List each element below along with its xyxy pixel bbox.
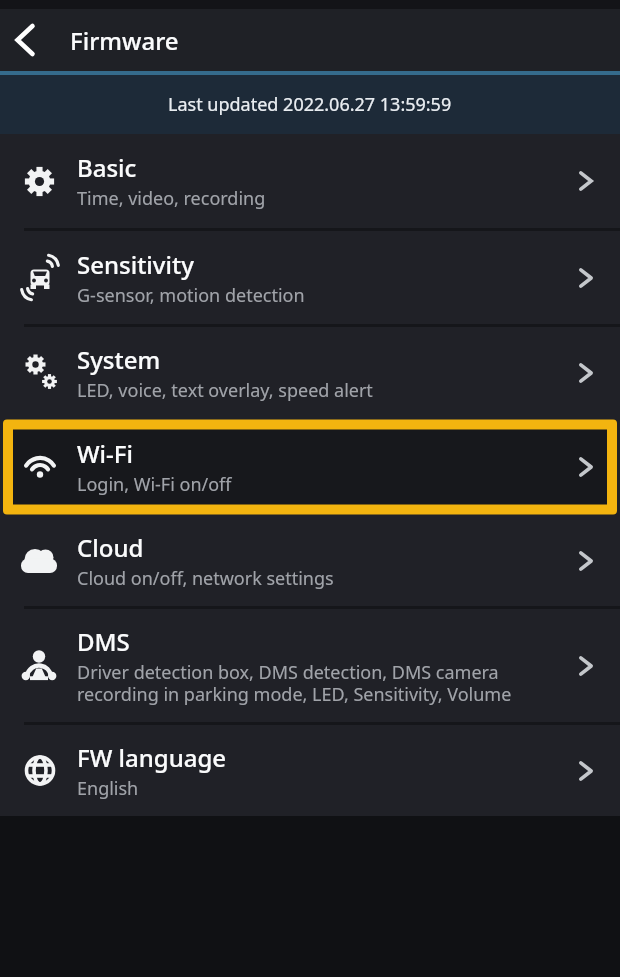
staticText: DMS	[77, 625, 130, 658]
staticText: G-sensor, motion detection	[77, 283, 305, 308]
staticText: Driver detection box, DMS detection, DMS…	[77, 660, 512, 706]
staticText: Wi-Fi	[77, 437, 133, 470]
button[interactable]: FW language	[0, 725, 620, 816]
staticText: English	[77, 776, 139, 801]
staticText: LED, voice, text overlay, speed alert	[77, 378, 373, 403]
staticText: Basic	[77, 151, 137, 184]
button[interactable]: System	[0, 327, 620, 419]
staticText: System	[77, 343, 161, 376]
staticText: Last updated 2022.06.27 13:59:59	[168, 92, 452, 117]
staticText: Cloud on/off, network settings	[77, 566, 334, 591]
staticText: Sensitivity	[77, 248, 194, 281]
button[interactable]	[0, 15, 50, 65]
button[interactable]: Wi-Fi	[0, 429, 620, 505]
staticText: Login, Wi-Fi on/off	[77, 472, 232, 497]
button[interactable]: DMS	[0, 609, 620, 722]
staticText: Firmware	[70, 24, 179, 57]
staticText: Time, video, recording	[77, 186, 266, 211]
staticText: Cloud	[77, 531, 144, 564]
button[interactable]: Cloud	[0, 515, 620, 606]
button[interactable]: Basic	[0, 134, 620, 228]
staticText: FW language	[77, 741, 227, 774]
button[interactable]: Sensitivity	[0, 231, 620, 324]
